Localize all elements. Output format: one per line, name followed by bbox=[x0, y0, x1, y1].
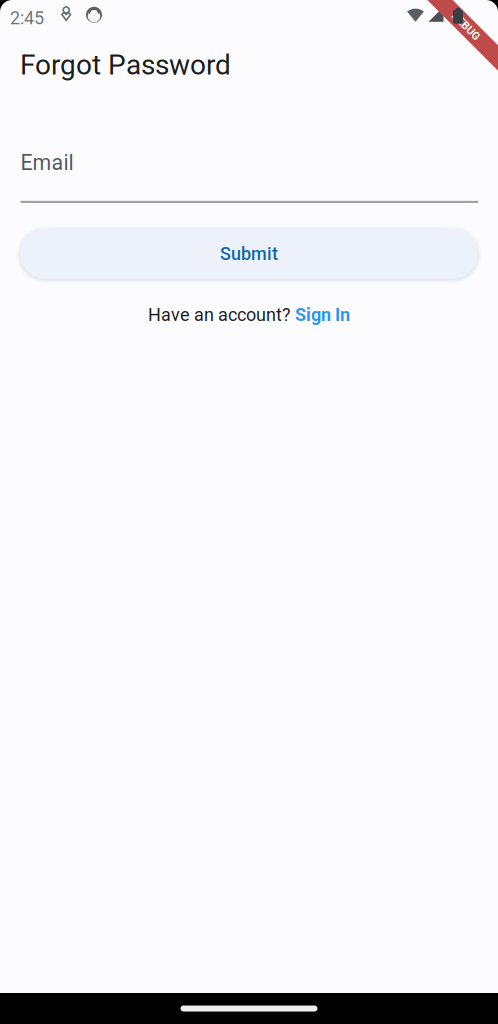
staticText: Forgot Password bbox=[20, 48, 231, 81]
staticText: DEBUG bbox=[447, 22, 482, 36]
staticText: Have an account? bbox=[148, 304, 295, 325]
button[interactable]: Sign In bbox=[295, 304, 350, 325]
button[interactable]: Submit bbox=[20, 229, 478, 279]
staticText: Email bbox=[20, 150, 73, 175]
staticText: 2:45 bbox=[10, 7, 44, 29]
staticText: Sign In bbox=[295, 304, 350, 325]
staticText: Submit bbox=[220, 243, 278, 264]
